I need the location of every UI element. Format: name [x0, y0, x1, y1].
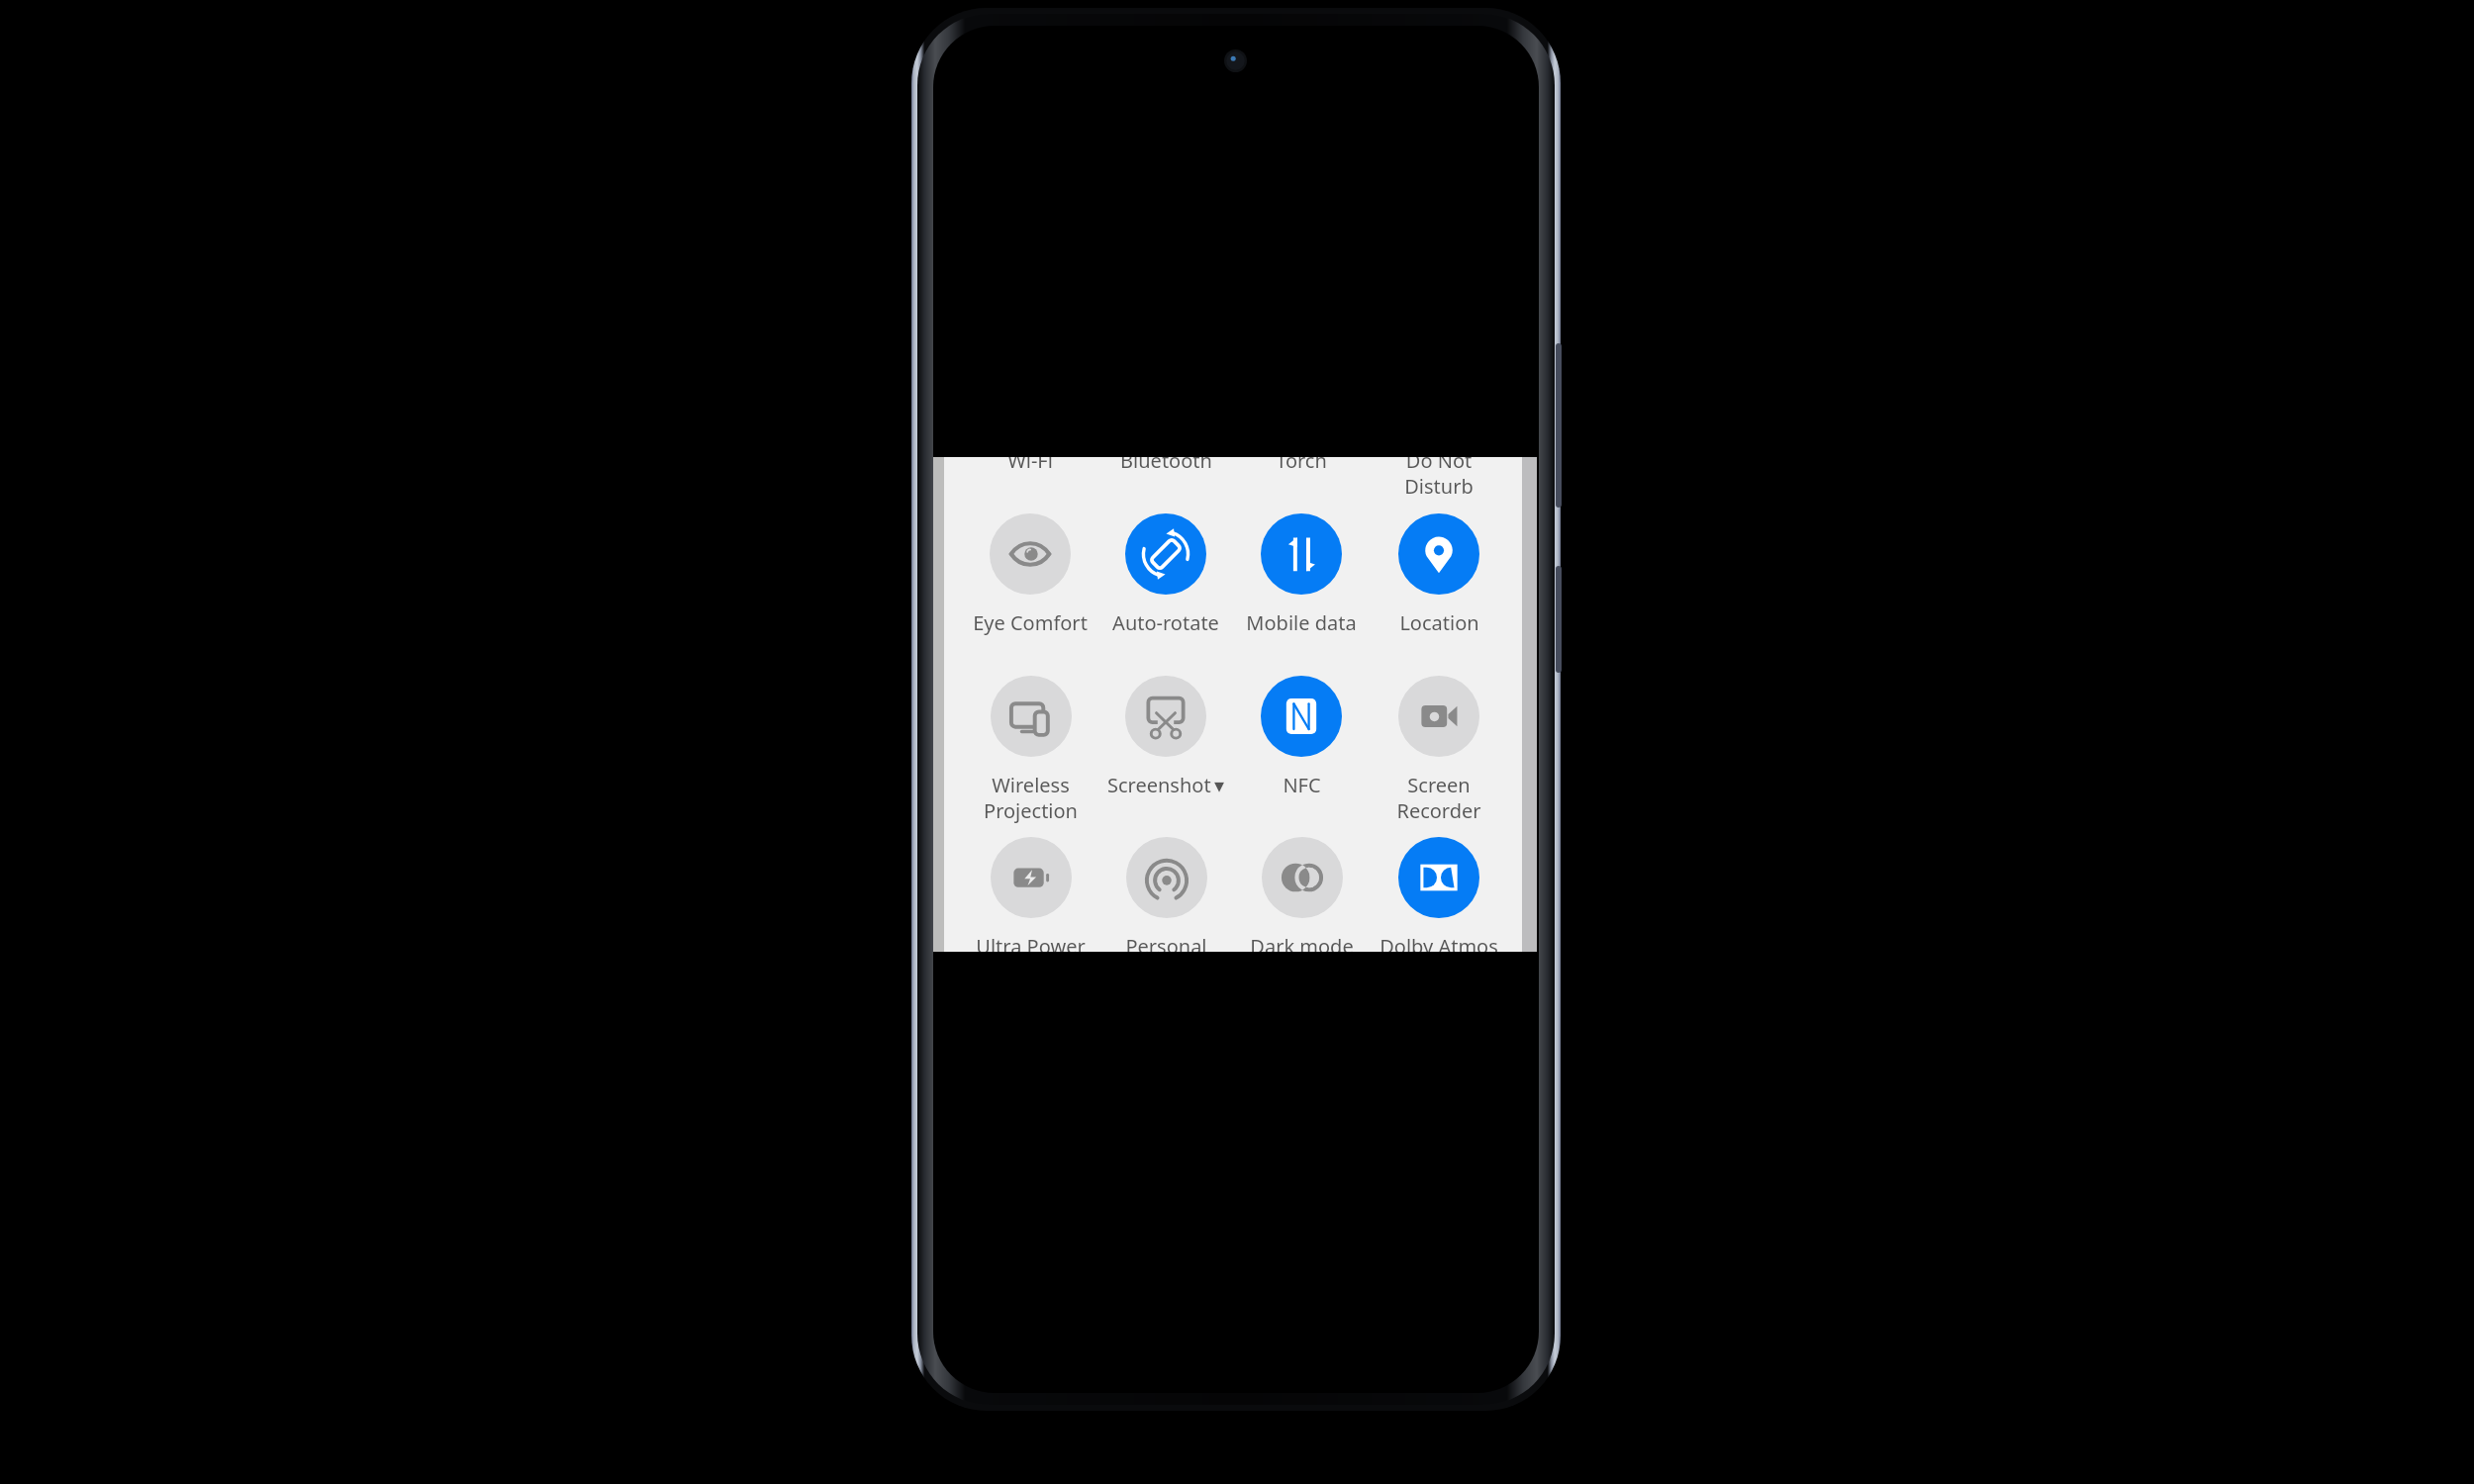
staticText: Dark mode: [1250, 933, 1354, 952]
button[interactable]: Bluetooth: [1096, 457, 1235, 507]
button[interactable]: Screenshot: [1096, 676, 1235, 826]
staticText: Do Not Disturb: [1404, 457, 1474, 499]
staticText: Dolby Atmos: [1380, 933, 1498, 952]
staticText: Auto-rotate: [1112, 609, 1219, 636]
button[interactable]: Screen Recorder: [1370, 676, 1508, 826]
button[interactable]: Wireless Projection: [961, 676, 1099, 826]
button[interactable]: Auto-rotate: [1096, 513, 1235, 664]
button[interactable]: Dolby Atmos: [1370, 837, 1508, 952]
staticText: Bluetooth: [1120, 457, 1212, 474]
staticText: Personal: [1125, 933, 1207, 952]
button[interactable]: Location: [1370, 513, 1508, 664]
button[interactable]: Mobile data: [1232, 513, 1371, 664]
staticText: Torch: [1276, 457, 1327, 474]
button[interactable]: Ultra Power: [961, 837, 1099, 952]
staticText: Mobile data: [1246, 609, 1357, 636]
button[interactable]: Eye Comfort: [961, 513, 1099, 664]
staticText: Wireless Projection: [984, 772, 1078, 823]
staticText: Screenshot ▾: [1107, 772, 1224, 798]
button[interactable]: Dark mode: [1232, 837, 1371, 952]
button[interactable]: Torch: [1232, 457, 1371, 507]
staticText: Eye Comfort: [973, 609, 1088, 636]
button[interactable]: Wi-Fi: [961, 457, 1099, 507]
staticText: Wi-Fi: [1007, 457, 1053, 474]
staticText: Screen Recorder: [1396, 772, 1481, 823]
staticText: Location: [1399, 609, 1479, 636]
staticText: NFC: [1283, 772, 1321, 798]
button[interactable]: Personal: [1096, 837, 1235, 952]
button[interactable]: NFC: [1232, 676, 1371, 826]
staticText: Ultra Power: [976, 933, 1086, 952]
button[interactable]: Do Not Disturb: [1370, 457, 1508, 507]
